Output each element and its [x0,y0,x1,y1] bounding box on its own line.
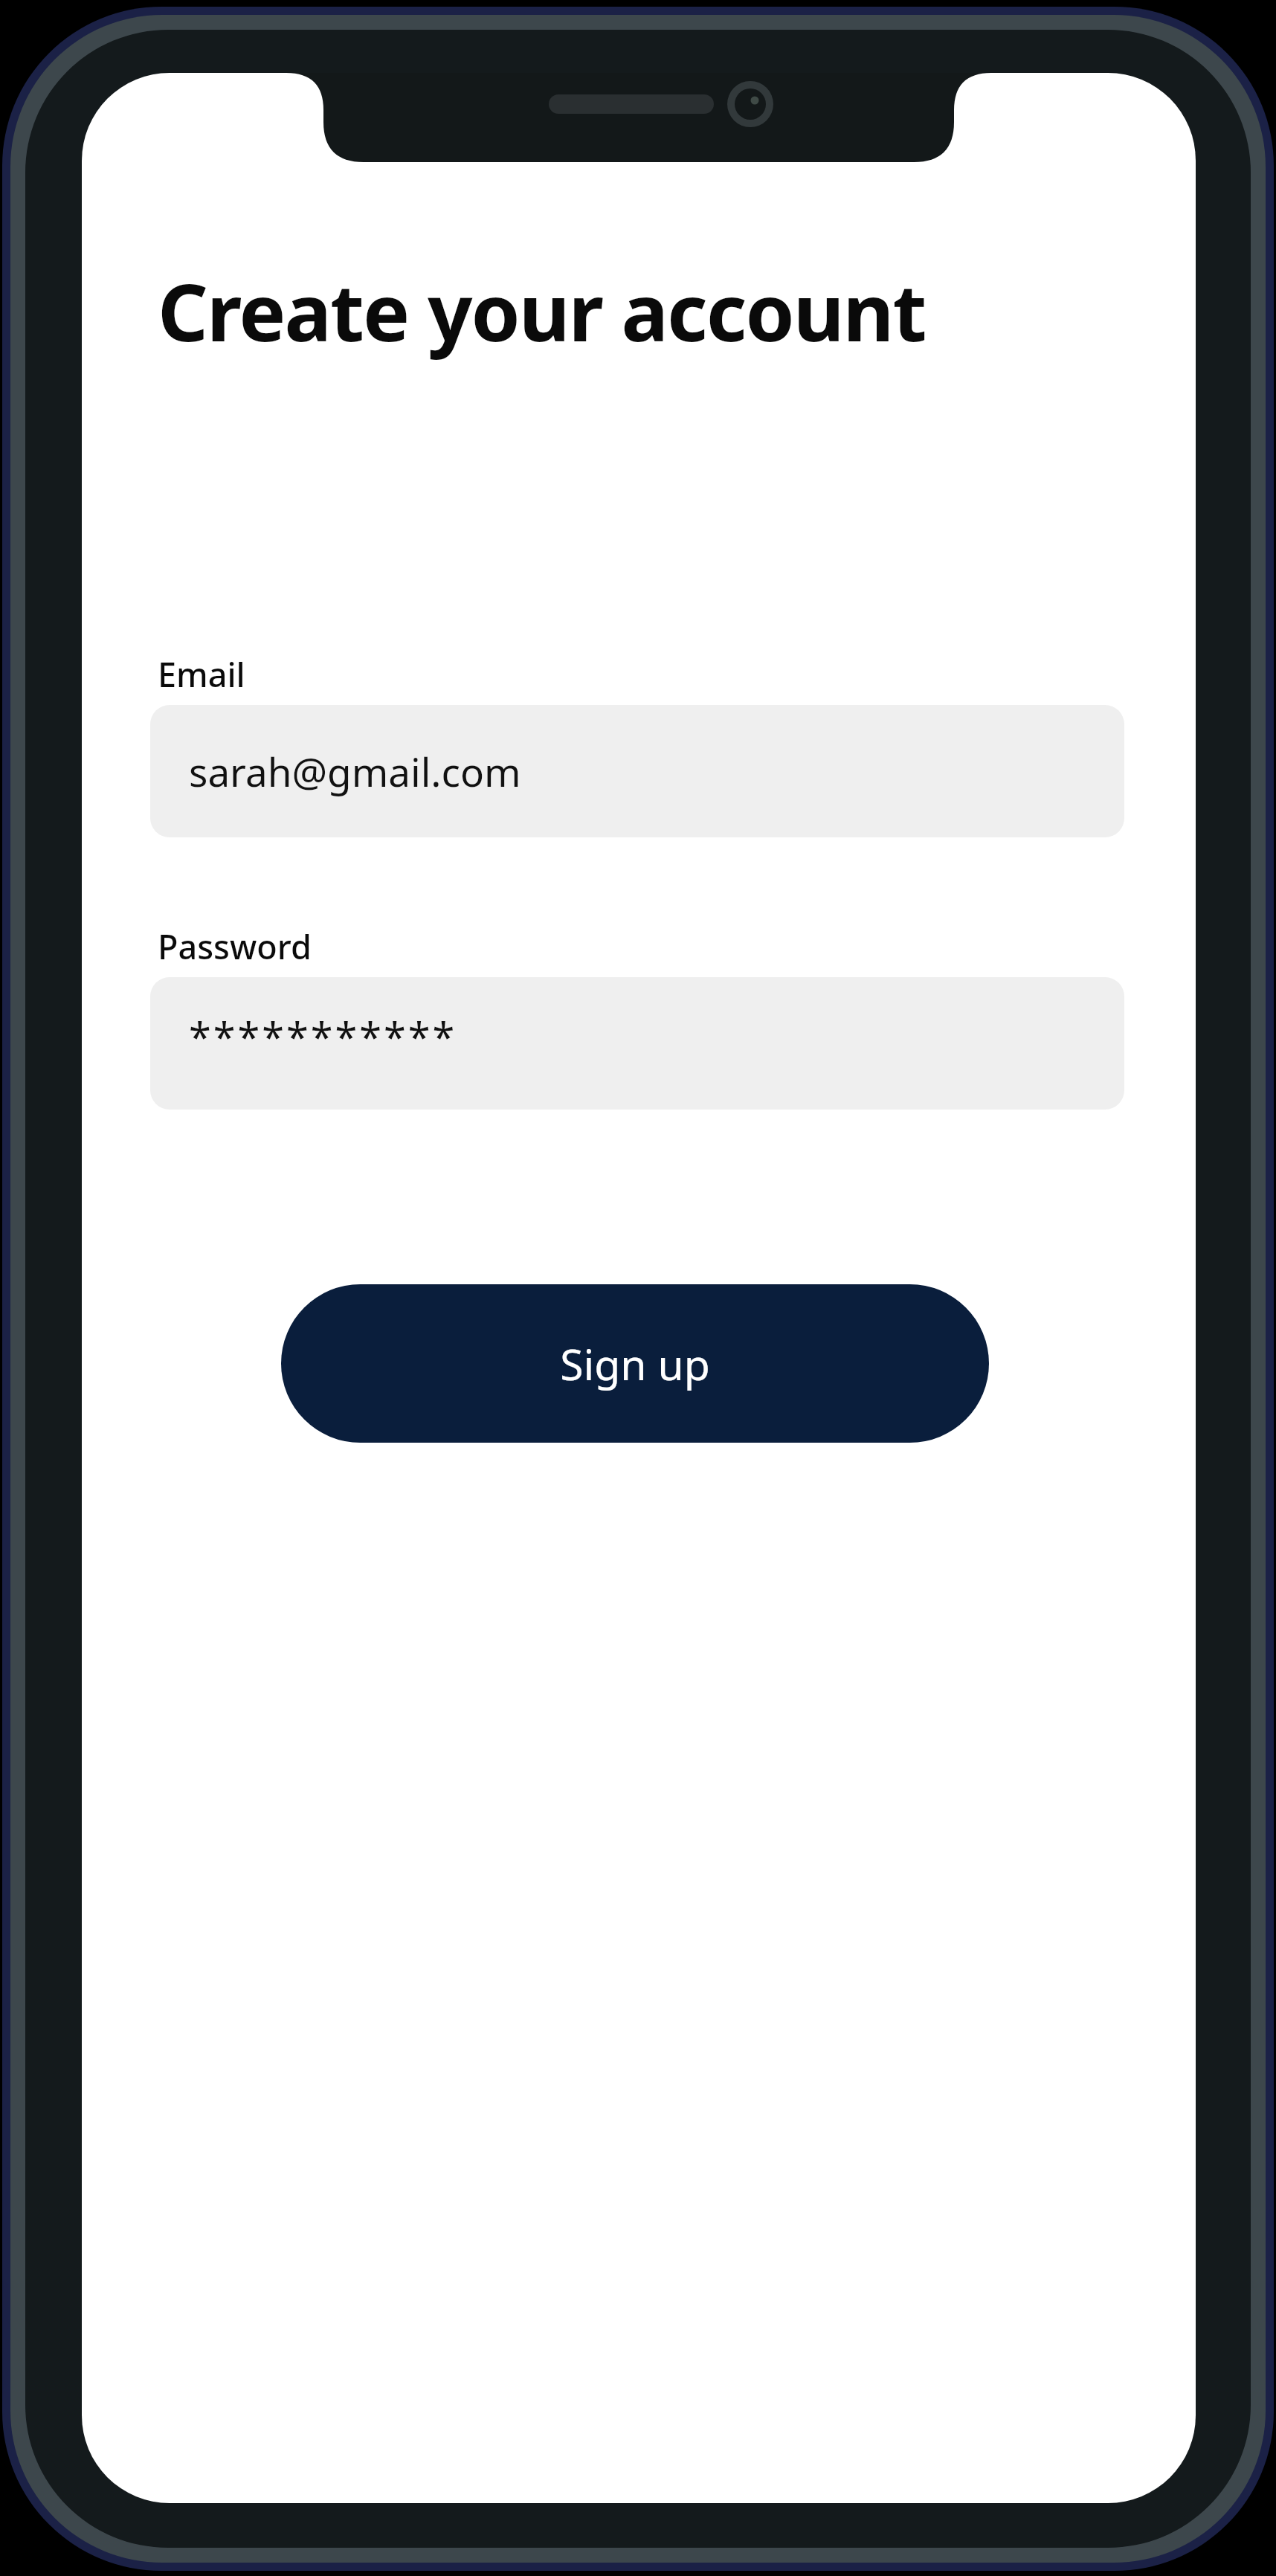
staticText: Email [158,651,245,697]
staticText: *********** [189,1009,457,1064]
staticText: Password [158,924,312,969]
staticText: Create your account [158,257,926,364]
staticText: Sign up [560,1335,710,1393]
staticText: sarah@gmail.com [189,744,521,798]
button[interactable]: *********** [150,977,1124,1110]
button[interactable]: Sign up [281,1284,989,1443]
button[interactable]: sarah@gmail.com [150,705,1124,837]
